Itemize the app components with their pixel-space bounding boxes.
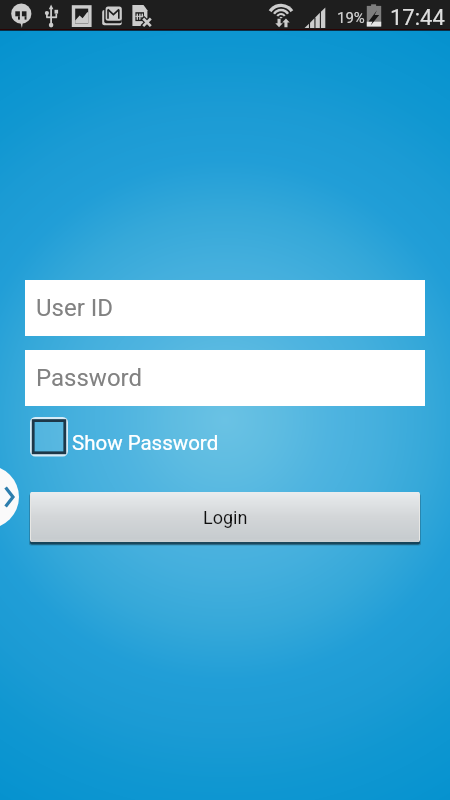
staticText: 17:44 bbox=[390, 5, 445, 31]
staticText: Login bbox=[203, 507, 248, 528]
staticText: 19% bbox=[337, 9, 365, 27]
staticText: Show Password bbox=[72, 431, 219, 455]
button[interactable]: Password bbox=[25, 350, 425, 406]
staticText: User ID bbox=[36, 294, 114, 322]
button[interactable]: Login bbox=[31, 492, 419, 542]
button[interactable]: User ID bbox=[25, 280, 425, 336]
button[interactable]: Show Password bbox=[30, 417, 219, 463]
staticText: Password bbox=[36, 364, 143, 392]
button[interactable]: Open navigation drawer bbox=[0, 465, 20, 529]
